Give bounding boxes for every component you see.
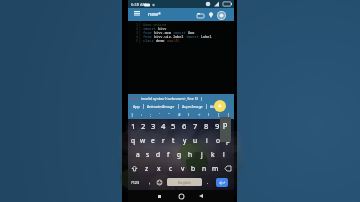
staticText: class [143, 38, 156, 42]
button[interactable]: AnimatedImage [144, 104, 178, 109]
button[interactable]: Emoji [154, 175, 164, 189]
button[interactable]: i [201, 133, 212, 147]
button[interactable]: ) [204, 111, 214, 117]
button[interactable]: Home [174, 190, 188, 202]
button[interactable]: q [128, 133, 138, 147]
button[interactable]: h [185, 147, 196, 161]
staticText: b [191, 164, 196, 173]
button[interactable]: English [167, 178, 202, 186]
button[interactable]: o [212, 133, 223, 147]
button[interactable]: 8 [201, 119, 212, 133]
button[interactable]: Attrib [207, 104, 223, 109]
staticText: 2 [128, 26, 138, 30]
button[interactable]: Menu [130, 7, 143, 20]
button[interactable]: d [153, 147, 163, 161]
button[interactable]: ] [224, 111, 234, 117]
button[interactable]: 7 [190, 119, 201, 133]
staticText: p [226, 136, 231, 145]
button[interactable]: p [223, 133, 234, 147]
staticText: j [201, 150, 203, 159]
button[interactable]: 4 [158, 119, 168, 133]
button[interactable]: Open folder [195, 10, 205, 20]
button[interactable]: g [174, 147, 185, 161]
button[interactable]: y [179, 133, 190, 147]
staticText: : [141, 112, 143, 117]
button[interactable]: App [130, 104, 143, 109]
button[interactable]: Recents [152, 190, 166, 202]
button[interactable]: ' [155, 111, 164, 117]
button[interactable]: Save [206, 10, 216, 20]
button[interactable]: b [188, 161, 199, 175]
staticText: [ [218, 112, 220, 117]
button[interactable]: 5 [168, 119, 179, 133]
button[interactable]: AsyncImage [179, 104, 206, 109]
staticText: x [157, 164, 161, 173]
button[interactable]: f [163, 147, 174, 161]
button[interactable]: ?123 [129, 175, 141, 189]
button[interactable]: 2 [138, 119, 148, 133]
button[interactable]: Shift [128, 161, 141, 175]
staticText: 2 [141, 121, 146, 131]
button[interactable]: 9 [212, 119, 223, 133]
button[interactable]: 0 [223, 119, 234, 133]
staticText: v [181, 164, 185, 173]
button[interactable]: l [218, 147, 229, 161]
button[interactable]: 1 [128, 119, 138, 133]
button[interactable]: ; [146, 111, 155, 117]
staticText: d [156, 150, 161, 159]
button[interactable]: . [204, 175, 212, 189]
staticText: f [167, 150, 170, 159]
button[interactable]: [ [214, 111, 224, 117]
staticText: App [188, 30, 195, 34]
staticText: s [146, 150, 150, 159]
button[interactable]: Enter [216, 178, 228, 187]
staticText: import [143, 26, 158, 30]
button[interactable]: x [153, 161, 165, 175]
button[interactable]: a [133, 147, 143, 161]
button[interactable]: Back [194, 190, 208, 202]
button[interactable]: r [158, 133, 168, 147]
button[interactable]: w [138, 133, 148, 147]
staticText: o [216, 136, 220, 145]
staticText: ?123 [131, 180, 140, 185]
button[interactable]: t [168, 133, 179, 147]
button[interactable]: | [128, 111, 137, 117]
staticText: 7 [193, 121, 198, 131]
button[interactable]: j [196, 147, 207, 161]
button[interactable]: u [190, 133, 201, 147]
staticText: 3 [128, 30, 138, 34]
staticText: import [173, 30, 188, 34]
button[interactable]: m [210, 161, 221, 175]
button[interactable]: n [199, 161, 210, 175]
staticText: m [212, 164, 219, 173]
button[interactable]: Account [216, 10, 226, 20]
button[interactable]: z [141, 161, 153, 175]
staticText: 3 [151, 121, 156, 131]
staticText: App [133, 104, 140, 109]
staticText: Label [201, 34, 212, 38]
button[interactable]: 6 [179, 119, 190, 133]
button[interactable]: k [207, 147, 218, 161]
staticText: l [223, 150, 225, 159]
button[interactable]: v [177, 161, 188, 175]
staticText: k [211, 150, 215, 159]
button[interactable]: ( [184, 111, 194, 117]
button[interactable]: Run [214, 100, 226, 112]
button[interactable]: " [164, 111, 174, 117]
button[interactable]: : [137, 111, 146, 117]
button[interactable]: # [174, 111, 184, 117]
button[interactable]: 3 [148, 119, 158, 133]
staticText: # [178, 112, 181, 117]
button[interactable]: < [194, 111, 204, 117]
button[interactable]: Backspace [221, 161, 234, 175]
staticText: 0 [226, 121, 231, 131]
button[interactable]: c [165, 161, 177, 175]
staticText: from [143, 34, 154, 38]
button[interactable]: , [145, 175, 154, 189]
staticText: 4 [161, 121, 166, 131]
button[interactable]: s [143, 147, 153, 161]
button[interactable]: e [148, 133, 158, 147]
staticText: " [168, 112, 170, 117]
staticText: . [207, 179, 209, 186]
staticText: from [143, 30, 154, 34]
